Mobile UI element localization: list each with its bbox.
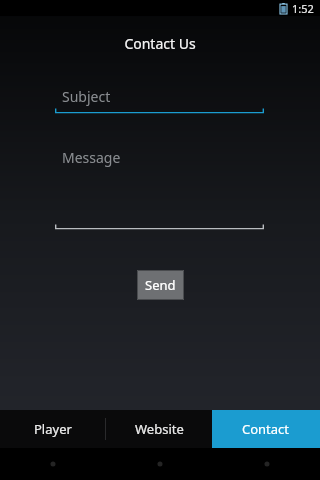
staticText: Send [145,276,176,294]
button[interactable]: Message [55,146,264,230]
staticText: Contact [242,420,290,438]
staticText: Website [135,420,184,438]
staticText: Message [62,148,121,167]
staticText: Subject [62,87,111,106]
staticText: Player [34,420,72,438]
button[interactable]: Contact [212,410,320,448]
staticText: 1:52 [292,1,314,16]
button[interactable]: Player [0,410,105,448]
button[interactable]: Subject [55,86,264,114]
button[interactable]: Send [137,270,184,300]
staticText: Contact Us [0,34,320,53]
button[interactable]: Website [106,410,212,448]
